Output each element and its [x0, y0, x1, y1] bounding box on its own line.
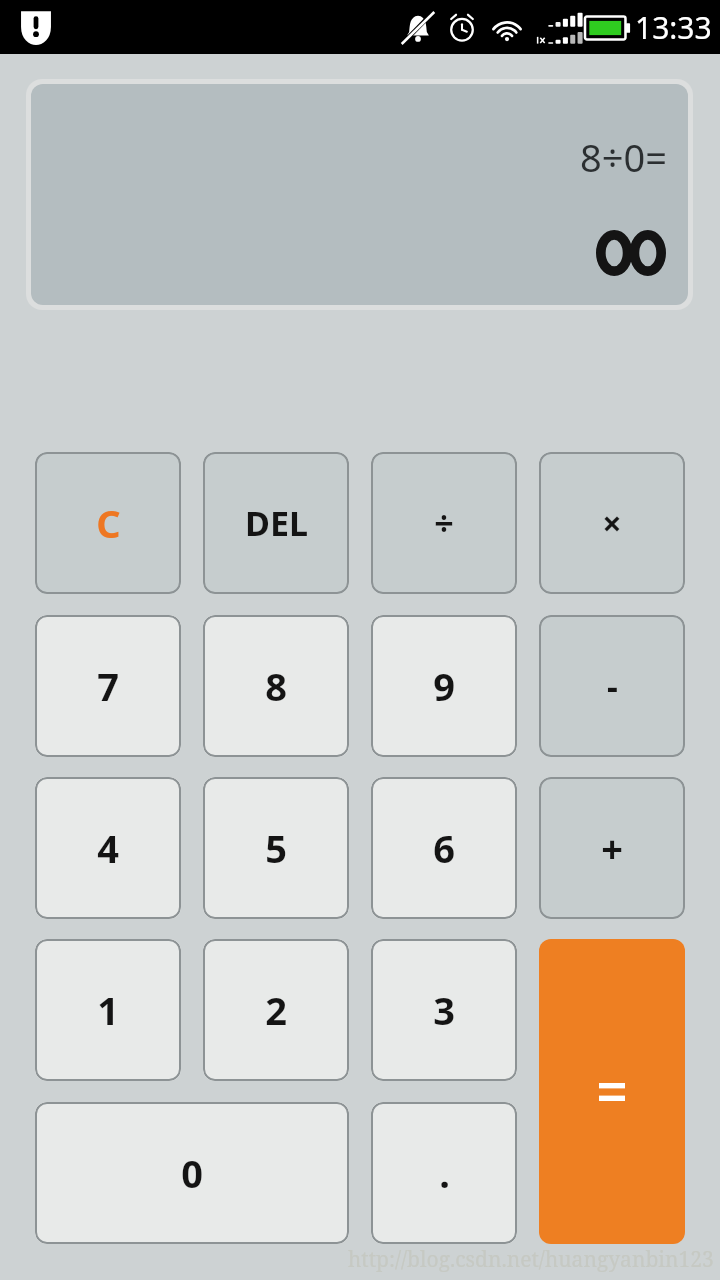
staticText: 3: [433, 984, 455, 1036]
button[interactable]: -: [539, 615, 685, 757]
button[interactable]: [539, 939, 685, 1244]
button[interactable]: 8: [203, 615, 349, 757]
staticText: 8÷0=: [580, 131, 667, 183]
staticText: 2: [265, 984, 287, 1036]
button[interactable]: .: [371, 1102, 517, 1244]
staticText: ×: [602, 500, 622, 546]
staticText: .: [439, 1147, 450, 1199]
button[interactable]: ÷: [371, 452, 517, 594]
staticText: C: [96, 497, 121, 549]
staticText: 13:33: [635, 7, 712, 48]
button[interactable]: 0: [35, 1102, 349, 1244]
staticText: 5: [265, 822, 287, 874]
button[interactable]: 5: [203, 777, 349, 919]
button[interactable]: 2: [203, 939, 349, 1081]
staticText: ÷: [434, 500, 454, 546]
button[interactable]: 7: [35, 615, 181, 757]
button[interactable]: DEL: [203, 452, 349, 594]
button[interactable]: 9: [371, 615, 517, 757]
staticText: http://blog.csdn.net/huangyanbin123: [348, 1245, 714, 1274]
button[interactable]: C: [35, 452, 181, 594]
other: Infinity result: [596, 230, 666, 276]
staticText: 8: [265, 660, 287, 712]
button[interactable]: 1: [35, 939, 181, 1081]
staticText: 1: [97, 984, 119, 1036]
staticText: -: [607, 663, 618, 709]
button[interactable]: 3: [371, 939, 517, 1081]
staticText: +: [601, 822, 623, 874]
staticText: 4: [97, 822, 119, 874]
button[interactable]: ×: [539, 452, 685, 594]
button[interactable]: 4: [35, 777, 181, 919]
button[interactable]: 6: [371, 777, 517, 919]
staticText: 9: [433, 660, 455, 712]
staticText: 0: [181, 1147, 203, 1199]
button[interactable]: +: [539, 777, 685, 919]
staticText: DEL: [245, 500, 308, 546]
staticText: 6: [433, 822, 455, 874]
staticText: 7: [97, 660, 119, 712]
